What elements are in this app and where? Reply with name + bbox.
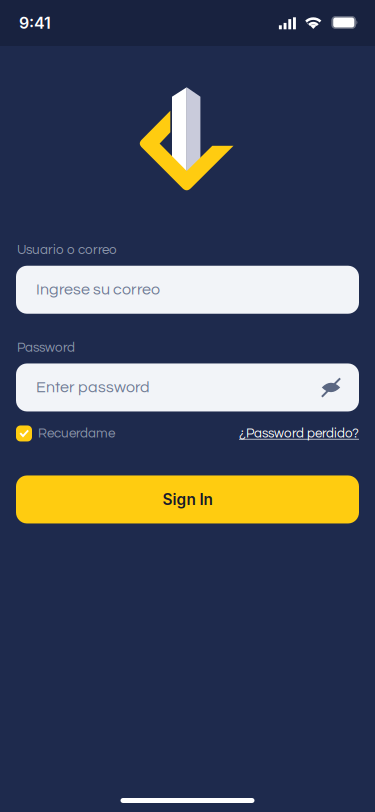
staticText: Enter password <box>36 379 150 396</box>
staticText: Ingrese su correo <box>36 281 160 298</box>
staticText: Recuerdame <box>38 427 115 440</box>
staticText: Sign In <box>162 490 212 509</box>
staticText: Password <box>17 341 75 354</box>
staticText: ¿Password perdido? <box>239 427 359 440</box>
button[interactable]: ¿Password perdido? <box>239 427 359 440</box>
staticText: Usuario o correo <box>17 243 117 257</box>
button[interactable]: Sign In <box>16 475 359 523</box>
staticText: 9:41 <box>19 13 51 33</box>
button[interactable]: Recuerdame <box>16 425 115 441</box>
button[interactable]: Show password <box>321 377 341 397</box>
